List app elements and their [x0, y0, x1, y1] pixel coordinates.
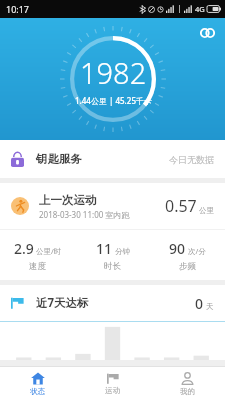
staticText: 0.57: [165, 195, 197, 217]
button[interactable]: 我的: [150, 367, 225, 400]
staticText: 2018-03-30 11:00 室内跑: [39, 209, 130, 220]
staticText: 上一次运动: [39, 193, 97, 207]
button[interactable]: 11: [75, 239, 150, 272]
staticText: 10:17: [6, 3, 30, 15]
button[interactable]: Pair device: [195, 21, 219, 45]
staticText: 1982: [80, 53, 147, 92]
staticText: 1.44公里 | 45.25千卡: [75, 95, 152, 106]
staticText: 分钟: [115, 247, 130, 256]
staticText: 状态: [30, 387, 45, 396]
staticText: 公里/时: [36, 246, 62, 256]
staticText: 90: [169, 239, 186, 258]
staticText: 步频: [179, 261, 196, 272]
staticText: 公里: [199, 206, 214, 215]
staticText: 2.9: [14, 239, 34, 258]
button[interactable]: 钥匙服务: [0, 140, 225, 178]
staticText: 时长: [104, 261, 121, 272]
staticText: 0: [195, 294, 204, 313]
staticText: 钥匙服务: [36, 152, 82, 166]
staticText: 4G: [195, 4, 205, 14]
button[interactable]: 2.9: [0, 239, 75, 272]
staticText: 今日无数据: [169, 154, 214, 165]
button[interactable]: 近7天达标: [0, 285, 225, 321]
staticText: 近7天达标: [36, 295, 89, 311]
button[interactable]: 运动: [75, 367, 150, 400]
staticText: 11: [96, 239, 113, 258]
staticText: 速度: [29, 261, 46, 272]
button[interactable]: 状态: [0, 367, 75, 400]
staticText: 我的: [180, 387, 195, 396]
button[interactable]: 上一次运动: [0, 183, 225, 229]
staticText: 天: [206, 302, 214, 311]
staticText: 运动: [105, 386, 120, 395]
button[interactable]: 90: [150, 239, 225, 272]
staticText: 次/分: [188, 246, 206, 256]
